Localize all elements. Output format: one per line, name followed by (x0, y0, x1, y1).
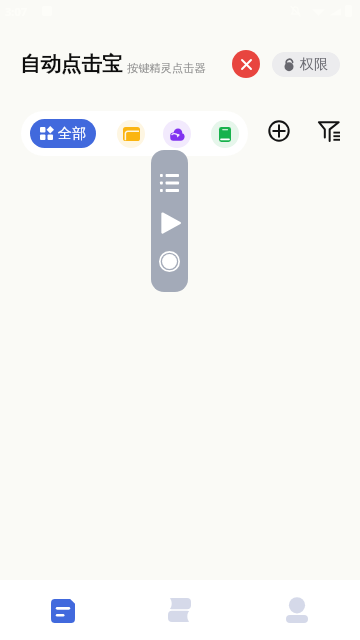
button[interactable]: Folder (117, 120, 145, 148)
button[interactable]: List (160, 174, 179, 192)
button[interactable]: Notes (211, 120, 239, 148)
staticText: 全部 (58, 125, 86, 143)
button[interactable]: Add (268, 120, 290, 142)
button[interactable]: 全部 (30, 119, 96, 148)
button[interactable]: Profile (238, 580, 355, 640)
staticText: 自动点击宝 (20, 51, 123, 77)
button[interactable]: Play (162, 213, 180, 233)
button[interactable]: Stop (232, 50, 260, 78)
button[interactable]: Sync (163, 120, 191, 148)
staticText: 按键精灵点击器 (127, 61, 206, 75)
button[interactable]: Record (159, 251, 180, 272)
staticText: 权限 (300, 56, 328, 74)
button[interactable]: Filter (318, 121, 340, 141)
button[interactable]: Library (121, 580, 238, 640)
button[interactable]: Scripts (5, 580, 121, 640)
button[interactable]: 权限 (272, 52, 340, 77)
